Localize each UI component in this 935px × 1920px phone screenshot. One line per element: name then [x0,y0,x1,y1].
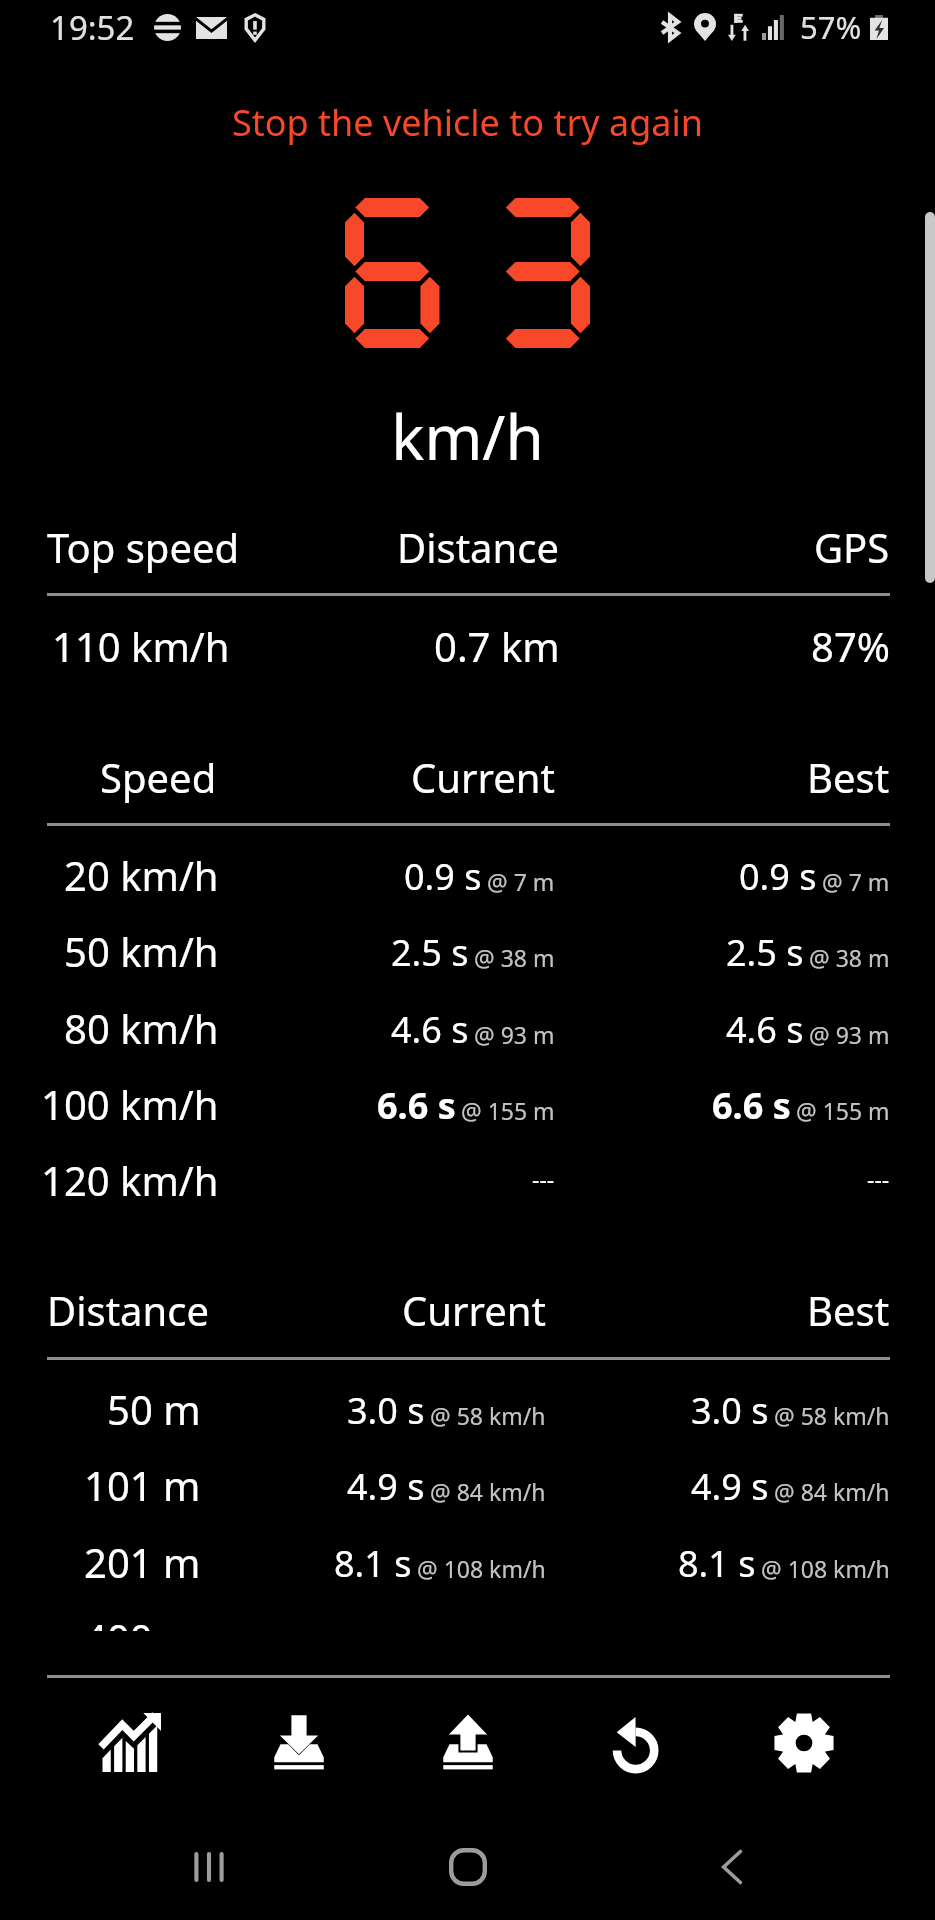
staticText: 400 m [84,1611,201,1631]
staticText: 4.9 s [347,1462,425,1511]
staticText: 2.5 s [726,928,804,977]
staticText: --- [532,1163,555,1194]
staticText: @ 58 km/h [430,1400,546,1431]
staticText: Current [402,1283,546,1337]
button[interactable]: Home [429,1828,507,1906]
button[interactable]: 80 km/h [0,985,935,1061]
staticText: 20 km/h [64,848,219,902]
button[interactable]: 50 km/h [0,908,935,984]
staticText: Speed [100,750,217,804]
staticText: 4.6 s [726,1005,804,1054]
staticText: 6.6 s [377,1081,456,1130]
staticText: @ 84 km/h [774,1476,890,1507]
staticText: 0.9 s [404,852,482,901]
staticText: 19:52 [50,5,135,50]
staticText: @ 108 km/h [761,1553,890,1584]
staticText: 101 m [84,1458,201,1512]
staticText: 8.1 s [334,1539,412,1588]
staticText: 3.0 s [691,1386,769,1435]
staticText: @ 93 m [474,1019,555,1050]
staticText: 0.9 s [739,852,817,901]
button[interactable]: 120 km/h [0,1137,935,1213]
staticText: @ 7 m [487,866,555,897]
staticText: 201 m [84,1535,201,1589]
staticText: 80 km/h [64,1001,219,1055]
staticText: 3.0 s [347,1386,425,1435]
staticText: @ 38 m [809,942,890,973]
staticText: @ 84 km/h [430,1476,546,1507]
button[interactable]: 20 km/h [0,832,935,908]
staticText: 57% [800,6,862,48]
staticText: @ 7 m [822,866,890,897]
staticText: Best [807,750,890,804]
button[interactable]: Back [692,1827,772,1907]
staticText: Stop the vehicle to try again [0,98,935,147]
button[interactable]: 50 m [0,1366,935,1442]
button[interactable]: Export [384,1675,552,1811]
button[interactable]: Reset [552,1675,720,1811]
staticText: Current [411,750,555,804]
staticText: 50 km/h [64,924,219,978]
button[interactable]: 100 km/h [0,1061,935,1137]
staticText: 110 km/h [52,619,230,673]
staticText: GPS [814,520,890,574]
staticText: Top speed [47,520,240,574]
button[interactable]: 201 m [0,1519,935,1595]
button[interactable]: 110 km/h [0,623,935,699]
staticText: 6.6 s [712,1081,791,1130]
staticText: Best [807,1283,890,1337]
button[interactable]: Import [215,1675,383,1811]
staticText: 4.9 s [691,1462,769,1511]
staticText: @ 93 m [809,1019,890,1050]
button[interactable]: Settings [720,1675,888,1811]
staticText: @ 155 m [461,1095,555,1126]
staticText: 4.6 s [391,1005,469,1054]
button[interactable]: Recent apps [169,1827,249,1907]
staticText: 0.7 km [434,619,560,673]
staticText: km/h [0,394,935,478]
staticText: 50 m [107,1382,201,1436]
staticText: Distance [397,520,560,574]
staticText: @ 108 km/h [417,1553,546,1584]
staticText: --- [867,1163,890,1194]
button[interactable]: Statistics [47,1675,215,1811]
staticText: @ 38 m [474,942,555,973]
staticText: Distance [47,1283,210,1337]
staticText: 87% [811,619,890,673]
staticText: 2.5 s [391,928,469,977]
button[interactable]: 101 m [0,1442,935,1518]
staticText: 8.1 s [678,1539,756,1588]
staticText: @ 155 m [796,1095,890,1126]
staticText: @ 58 km/h [774,1400,890,1431]
staticText: 100 km/h [41,1077,219,1131]
button[interactable]: 400 m [0,1595,935,1631]
staticText: 120 km/h [41,1153,219,1207]
